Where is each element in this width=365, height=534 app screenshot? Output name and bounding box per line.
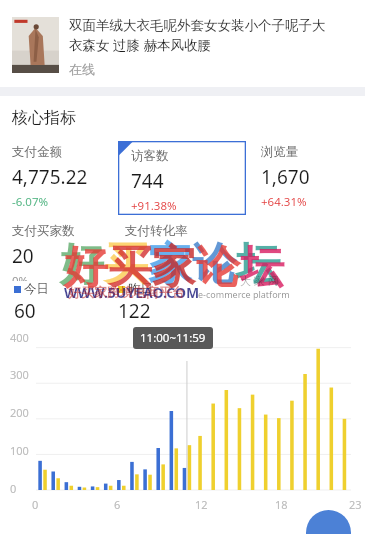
staticText: 60 xyxy=(14,298,36,324)
staticText: 400 xyxy=(10,330,29,345)
staticText: 18 xyxy=(275,497,288,512)
staticText: WWW.5UYEAO.COM xyxy=(64,283,200,302)
staticText: 好 xyxy=(64,240,108,295)
staticText: 11:00~11:59 xyxy=(140,330,206,346)
staticText: 家 xyxy=(152,240,196,295)
staticText: 买 xyxy=(108,240,152,295)
staticText: 坛 xyxy=(236,237,280,292)
staticText: +91.38% xyxy=(131,198,177,214)
staticText: 访客数 xyxy=(131,148,169,164)
staticText: 浏览量 xyxy=(261,144,299,160)
staticText: 今日 xyxy=(24,281,49,297)
staticText: 200 xyxy=(10,405,29,420)
staticText: 0 xyxy=(10,481,17,496)
staticText: 100 xyxy=(10,443,29,458)
staticText: 300 xyxy=(10,367,29,382)
staticText: 0 xyxy=(32,497,39,512)
staticText: 昨日 xyxy=(128,281,153,297)
staticText: 论 xyxy=(192,237,236,292)
staticText: 好 xyxy=(60,237,104,292)
button[interactable]: 访客数 xyxy=(118,141,246,215)
staticText: 0% xyxy=(12,273,29,281)
button[interactable]: 支付金额 xyxy=(12,144,118,210)
button[interactable]: Customer service xyxy=(306,510,351,534)
staticText: 家 xyxy=(148,237,192,292)
button[interactable]: 支付买家数 xyxy=(12,223,118,281)
button[interactable]: 双面羊绒大衣毛呢外套女女装小个子呢子大 衣森女 过膝 赫本风收腰 xyxy=(0,0,365,87)
button[interactable]: 今日 xyxy=(14,281,49,324)
staticText: 支付金额 xyxy=(12,144,62,160)
staticText: 坛 xyxy=(240,240,284,295)
staticText: 核心指标 xyxy=(12,108,76,128)
staticText: 744 xyxy=(131,168,164,194)
button[interactable]: 浏览量 xyxy=(261,144,365,210)
staticText: 6 xyxy=(114,497,121,512)
staticText: 论 xyxy=(196,240,240,295)
staticText: +64.31% xyxy=(261,194,307,210)
staticText: 在线 xyxy=(69,61,95,77)
staticText: 4,775.22 xyxy=(12,164,88,190)
staticText: 支付买家数 xyxy=(12,223,75,239)
staticText: -6.07% xyxy=(12,194,49,210)
button[interactable]: 昨日 xyxy=(118,281,153,324)
staticText: 好买家跨境电商平台 xyxy=(68,284,185,300)
staticText: 大 家 网 xyxy=(240,273,279,288)
staticText: e-commerce platform xyxy=(198,288,290,300)
staticText: 双面羊绒大衣毛呢外套女女装小个子呢子大 衣森女 过膝 赫本风收腰 xyxy=(69,17,326,54)
staticText: 买 xyxy=(104,237,148,292)
staticText: 支付转化率 xyxy=(125,223,188,239)
staticText: 20 xyxy=(12,243,34,269)
staticText: 23 xyxy=(349,497,362,512)
staticText: 122 xyxy=(118,298,151,324)
staticText: 1,670 xyxy=(261,164,310,190)
staticText: 12 xyxy=(195,497,208,512)
